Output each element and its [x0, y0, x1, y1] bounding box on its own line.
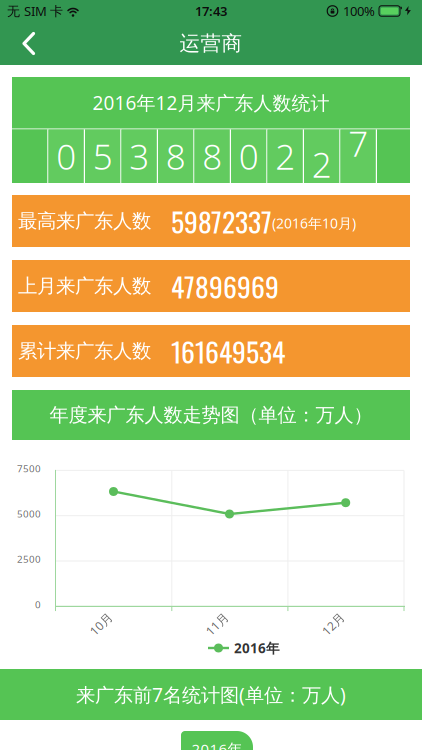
- staticText: 2016年12月来广东人数统计: [92, 90, 329, 116]
- staticText: 5000: [17, 507, 41, 520]
- staticText: 2: [275, 132, 295, 180]
- staticText: 161649534: [171, 330, 285, 371]
- staticText: 12月: [320, 616, 346, 632]
- staticText: 2: [312, 140, 332, 188]
- staticText: 0: [35, 598, 41, 611]
- staticText: 3: [129, 132, 149, 180]
- staticText: 5: [93, 132, 113, 180]
- staticText: (2016年10月): [272, 213, 356, 233]
- staticText: 来广东前7名统计图(单位：万人): [76, 681, 346, 708]
- staticText: 0: [239, 132, 259, 180]
- staticText: 上月来广东人数: [18, 274, 151, 298]
- staticText: 2016年: [191, 739, 242, 750]
- staticText: 10月: [88, 616, 114, 632]
- staticText: 47896969: [171, 265, 279, 306]
- staticText: 累计来广东人数: [18, 339, 151, 363]
- staticText: 运营商: [179, 31, 242, 56]
- staticText: 17:43: [195, 2, 227, 20]
- staticText: 无 SIM 卡: [7, 2, 63, 20]
- staticText: 年度来广东人数走势图（单位：万人）: [49, 403, 372, 427]
- staticText: 8: [202, 132, 222, 180]
- staticText: 59872337: [171, 200, 272, 241]
- staticText: 0: [56, 132, 76, 180]
- staticText: 7500: [17, 462, 41, 475]
- staticText: 2016年: [234, 639, 280, 657]
- staticText: 11月: [204, 616, 230, 632]
- button[interactable]: Back: [0, 22, 49, 64]
- button[interactable]: 2016年: [181, 731, 253, 750]
- staticText: 100%: [343, 2, 375, 20]
- staticText: 7: [348, 119, 368, 167]
- staticText: 8: [166, 132, 186, 180]
- staticText: 最高来广东人数: [18, 209, 151, 233]
- staticText: 2500: [17, 552, 41, 566]
